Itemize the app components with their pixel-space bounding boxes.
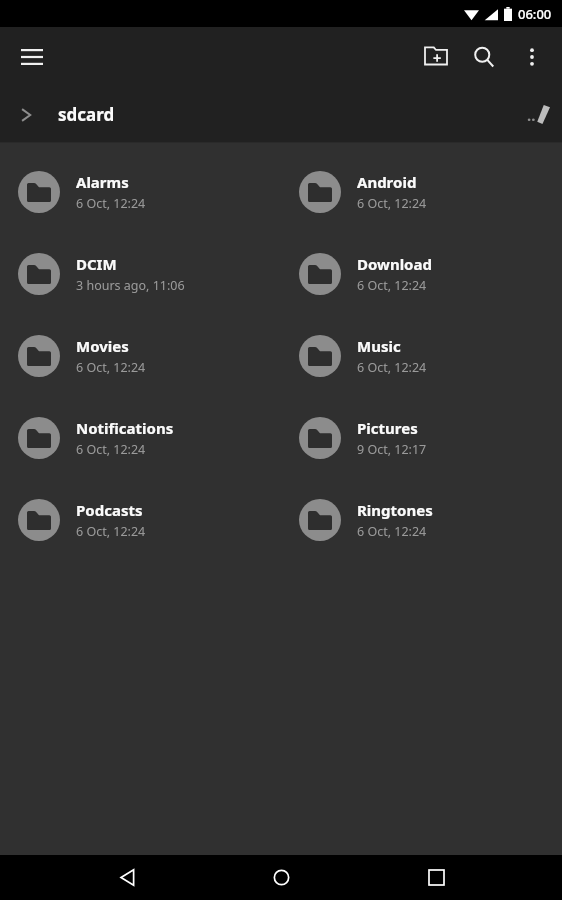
button[interactable]: Search	[460, 33, 508, 81]
button[interactable]: Notifications	[0, 397, 281, 479]
button[interactable]: sdcard	[52, 86, 121, 143]
staticText: Movies	[76, 336, 129, 356]
button[interactable]: More options	[508, 33, 556, 81]
staticText: Music	[357, 336, 401, 356]
staticText: Alarms	[76, 172, 129, 192]
button[interactable]: Pictures	[281, 397, 562, 479]
staticText: 6 Oct, 12:24	[357, 277, 427, 294]
staticText: 06:00	[518, 5, 552, 23]
staticText: sdcard	[58, 103, 115, 126]
staticText: Notifications	[76, 418, 174, 438]
button[interactable]: Podcasts	[0, 479, 281, 561]
staticText: Ringtones	[357, 500, 433, 520]
button[interactable]: Home	[253, 855, 309, 900]
staticText: Download	[357, 254, 432, 274]
staticText: 3 hours ago, 11:06	[76, 277, 185, 294]
button[interactable]: Open navigation drawer	[8, 33, 56, 81]
button[interactable]: Ringtones	[281, 479, 562, 561]
button[interactable]: Movies	[0, 315, 281, 397]
staticText: 6 Oct, 12:24	[76, 195, 146, 212]
button[interactable]: Create new folder	[412, 33, 460, 81]
staticText: 6 Oct, 12:24	[357, 359, 427, 376]
staticText: 6 Oct, 12:24	[76, 441, 146, 458]
button[interactable]: Music	[281, 315, 562, 397]
staticText: ..	[527, 105, 536, 125]
staticText: Podcasts	[76, 500, 143, 520]
staticText: 6 Oct, 12:24	[357, 523, 427, 540]
button[interactable]: Back	[99, 855, 155, 900]
staticText: Android	[357, 172, 417, 192]
button[interactable]: Android	[281, 151, 562, 233]
staticText: 6 Oct, 12:24	[76, 359, 146, 376]
staticText: DCIM	[76, 254, 117, 274]
button[interactable]: Go up	[0, 86, 52, 143]
button[interactable]: Alarms	[0, 151, 281, 233]
staticText: 6 Oct, 12:24	[76, 523, 146, 540]
button[interactable]: Edit path	[527, 105, 550, 125]
staticText: 6 Oct, 12:24	[357, 195, 427, 212]
staticText: Pictures	[357, 418, 418, 438]
button[interactable]: Recent apps	[408, 855, 464, 900]
staticText: 9 Oct, 12:17	[357, 441, 427, 458]
button[interactable]: Download	[281, 233, 562, 315]
button[interactable]: DCIM	[0, 233, 281, 315]
